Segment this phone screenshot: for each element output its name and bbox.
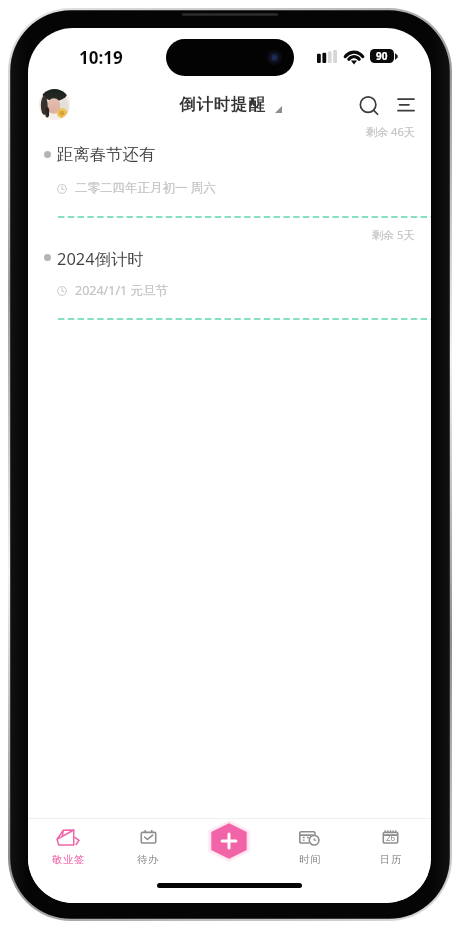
button[interactable]: 26 xyxy=(350,819,431,866)
button[interactable]: 2024倒计时 xyxy=(57,247,144,269)
button[interactable]: 距离春节还有 xyxy=(57,144,156,165)
staticText: 时间 xyxy=(299,853,321,866)
staticText: 2024/1/1 元旦节 xyxy=(75,282,168,299)
staticText: 90 xyxy=(376,49,388,63)
staticText: 待办 xyxy=(137,853,159,866)
staticText: 剩余 5天 xyxy=(372,227,415,242)
staticText: 敬业签 xyxy=(52,853,85,866)
staticText: 10:19 xyxy=(79,46,123,69)
staticText: 26 xyxy=(386,832,396,843)
button[interactable]: Menu xyxy=(390,88,422,120)
button[interactable]: 待办 xyxy=(108,819,188,866)
staticText: 倒计时提醒 xyxy=(179,94,266,115)
button[interactable]: Profile xyxy=(39,89,70,120)
button[interactable]: 倒计时提醒 xyxy=(179,94,282,115)
button[interactable]: 剩余 46天 xyxy=(301,124,415,139)
button[interactable]: 敬业签 xyxy=(28,819,108,866)
staticText: 二零二四年正月初一 周六 xyxy=(75,179,216,196)
staticText: 剩余 46天 xyxy=(366,124,415,139)
button[interactable]: Search xyxy=(351,88,384,121)
button[interactable]: 剩余 5天 xyxy=(301,227,415,242)
staticText: 日历 xyxy=(380,853,402,866)
button[interactable]: Add xyxy=(206,818,252,864)
button[interactable]: 时间 xyxy=(269,819,350,866)
